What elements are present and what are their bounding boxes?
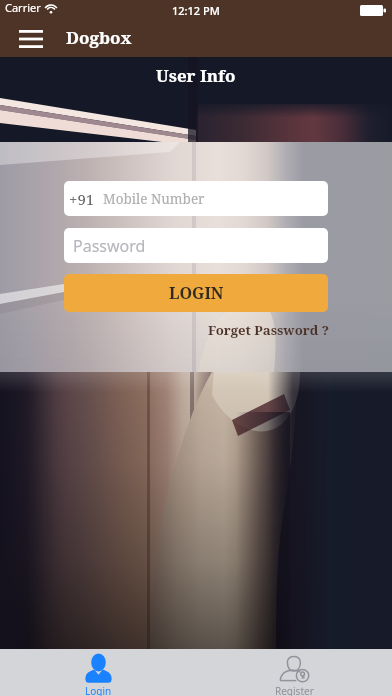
button[interactable]: +91 xyxy=(64,181,328,216)
staticText: Carrier xyxy=(5,0,41,15)
staticText: User Info xyxy=(156,64,236,87)
staticText: +91 xyxy=(69,189,95,209)
staticText: LOGIN xyxy=(169,282,224,304)
staticText: 12:12 PM xyxy=(172,3,220,18)
staticText: Login xyxy=(85,684,112,696)
staticText: Dogbox xyxy=(66,26,132,49)
staticText: Password xyxy=(73,235,146,257)
button[interactable]: LOGIN xyxy=(64,274,328,312)
button[interactable]: Open navigation menu xyxy=(8,20,54,57)
staticText: Forget Password ? xyxy=(208,321,329,339)
staticText: Mobile Number xyxy=(103,190,205,208)
staticText: Register xyxy=(275,684,314,696)
button[interactable]: Forget Password ? xyxy=(207,321,328,339)
button[interactable]: Register xyxy=(196,649,392,696)
button[interactable]: Password xyxy=(64,228,328,263)
button[interactable]: Login xyxy=(0,649,196,696)
